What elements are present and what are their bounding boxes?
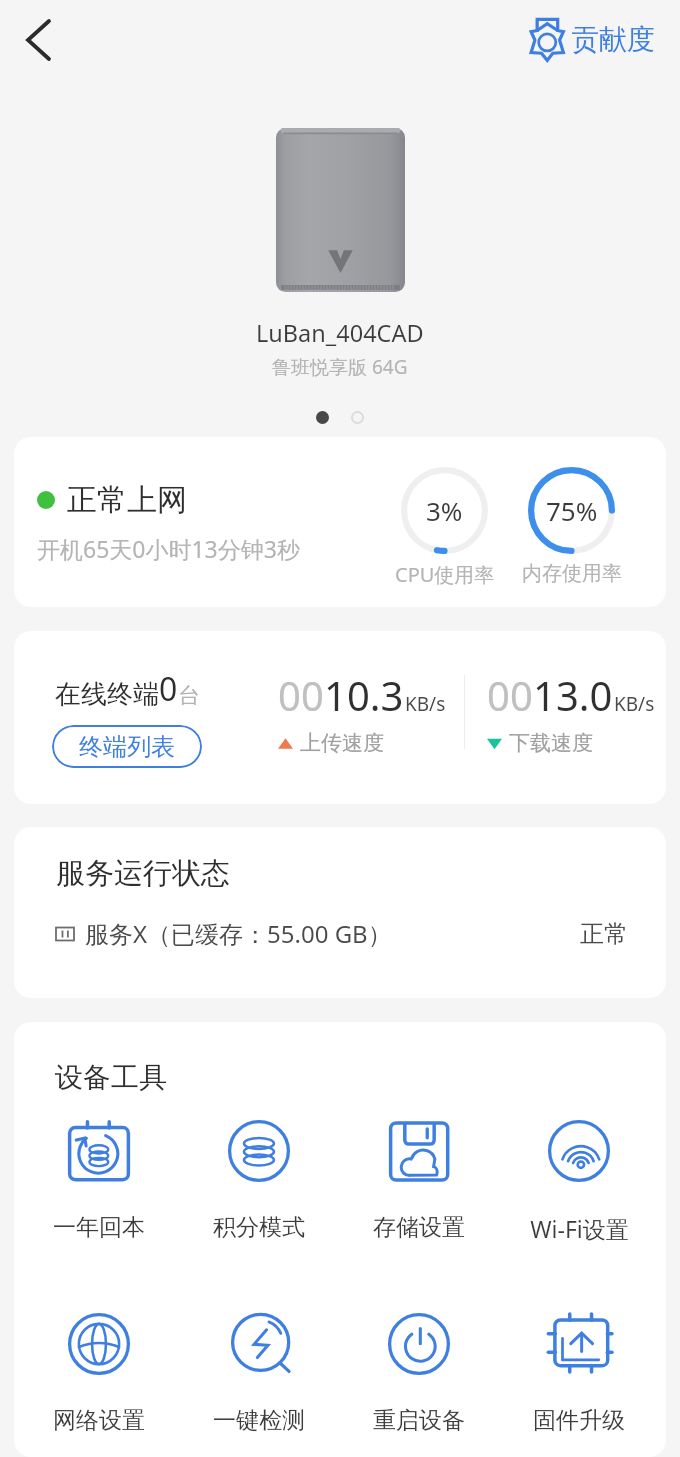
staticText: 终端列表 bbox=[79, 732, 175, 762]
staticText: 鲁班悦享版 64G bbox=[272, 354, 408, 380]
button[interactable]: 存储设置 bbox=[339, 1118, 499, 1242]
staticText: 在线终端 bbox=[55, 678, 159, 711]
staticText: 正常上网 bbox=[67, 481, 187, 519]
staticText: 10.3 bbox=[324, 668, 404, 722]
staticText: 网络设置 bbox=[53, 1406, 145, 1435]
staticText: 开机65天0小时13分钟3秒 bbox=[37, 533, 300, 564]
staticText: KB/s bbox=[614, 691, 655, 717]
staticText: 上传速度 bbox=[300, 730, 384, 756]
staticText: 00 bbox=[278, 668, 324, 722]
staticText: 内存使用率 bbox=[522, 561, 622, 586]
staticText: Wi-Fi设置 bbox=[530, 1213, 629, 1244]
staticText: 服务运行状态 bbox=[56, 855, 230, 892]
button[interactable]: Wi-Fi设置 bbox=[499, 1118, 659, 1244]
button[interactable]: 一年回本 bbox=[19, 1118, 179, 1242]
staticText: 一年回本 bbox=[53, 1213, 145, 1242]
staticText: LuBan_404CAD bbox=[256, 317, 424, 349]
staticText: 下载速度 bbox=[509, 730, 593, 756]
button[interactable]: 一键检测 bbox=[179, 1311, 339, 1435]
staticText: 3% bbox=[426, 493, 463, 528]
staticText: 13.0 bbox=[533, 668, 613, 722]
button[interactable]: 重启设备 bbox=[339, 1311, 499, 1435]
staticText: 积分模式 bbox=[213, 1213, 305, 1242]
staticText: 00 bbox=[487, 668, 533, 722]
staticText: 贡献度 bbox=[571, 22, 655, 57]
staticText: KB/s bbox=[405, 691, 446, 717]
staticText: 一键检测 bbox=[213, 1406, 305, 1435]
staticText: 设备工具 bbox=[55, 1060, 167, 1095]
button[interactable]: 终端列表 bbox=[52, 725, 202, 768]
staticText: 存储设置 bbox=[373, 1213, 465, 1242]
button[interactable]: 积分模式 bbox=[179, 1118, 339, 1242]
staticText: CPU使用率 bbox=[395, 561, 495, 588]
button[interactable]: 服务X（已缓存：55.00 GB） bbox=[56, 917, 628, 950]
staticText: 正常 bbox=[580, 919, 628, 949]
staticText: 固件升级 bbox=[533, 1406, 625, 1435]
staticText: 服务X（已缓存：55.00 GB） bbox=[85, 917, 392, 950]
button[interactable]: 贡献度 bbox=[529, 17, 655, 62]
staticText: 0 bbox=[159, 667, 178, 711]
staticText: 75% bbox=[546, 493, 598, 528]
staticText: 重启设备 bbox=[373, 1406, 465, 1435]
button[interactable]: Back bbox=[8, 10, 68, 70]
button[interactable]: 固件升级 bbox=[499, 1311, 659, 1435]
button[interactable]: 网络设置 bbox=[19, 1311, 179, 1435]
staticText: 台 bbox=[178, 682, 200, 710]
